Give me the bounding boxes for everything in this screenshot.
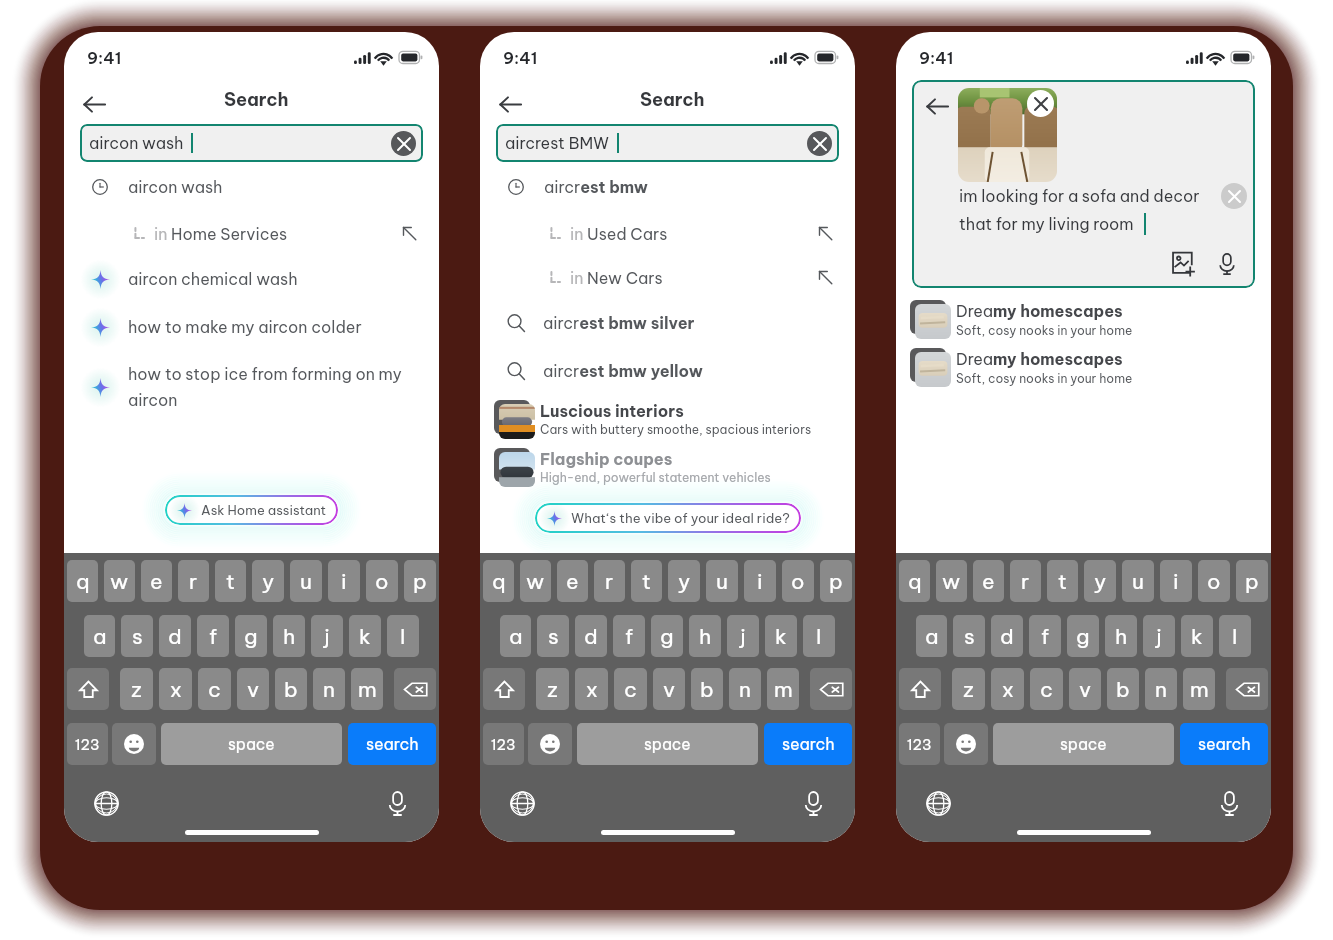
button[interactable]: u	[706, 560, 738, 602]
button[interactable]: x	[575, 668, 608, 710]
button[interactable]: h	[1105, 615, 1137, 657]
button[interactable]: in Home Services	[64, 211, 439, 256]
button[interactable]: Ask Home assistant	[165, 495, 338, 525]
button[interactable]: in New Cars	[480, 255, 855, 300]
button[interactable]: 123	[67, 723, 108, 765]
button[interactable]: space	[161, 723, 342, 765]
button[interactable]: What‘s the vibe of your ideal ride?	[535, 503, 801, 533]
button[interactable]: u	[290, 560, 322, 602]
button[interactable]: p	[404, 560, 436, 602]
button[interactable]: s	[121, 615, 153, 657]
button[interactable]: x	[159, 668, 192, 710]
button[interactable]: m	[1183, 668, 1215, 710]
button[interactable]: z	[952, 668, 985, 710]
button[interactable]: Back	[919, 88, 955, 124]
button[interactable]: f	[197, 615, 229, 657]
button[interactable]: z	[536, 668, 569, 710]
button[interactable]: Flagship coupes	[480, 443, 855, 491]
button[interactable]: Backspace	[1226, 668, 1268, 710]
button[interactable]: l	[803, 615, 835, 657]
button[interactable]: g	[1067, 615, 1099, 657]
button[interactable]: x	[991, 668, 1024, 710]
button[interactable]: s	[953, 615, 985, 657]
button[interactable]: Dreamy homescapes	[896, 295, 1271, 343]
button[interactable]: Remove image	[1027, 90, 1054, 117]
button[interactable]: r	[1010, 560, 1041, 602]
button[interactable]: Change keyboard	[90, 787, 122, 819]
button[interactable]: Dictate	[1213, 787, 1245, 819]
button[interactable]: q	[483, 560, 514, 602]
button[interactable]: e	[557, 560, 588, 602]
button[interactable]: b	[275, 668, 307, 710]
button[interactable]: f	[613, 615, 645, 657]
button[interactable]: u	[1122, 560, 1154, 602]
button[interactable]: i	[1160, 560, 1192, 602]
button[interactable]: o	[1198, 560, 1230, 602]
button[interactable]: Change keyboard	[922, 787, 954, 819]
button[interactable]: a	[84, 615, 115, 657]
button[interactable]: Luscious interiors	[480, 395, 855, 443]
button[interactable]: o	[366, 560, 398, 602]
button[interactable]: Emoji	[112, 723, 156, 765]
button[interactable]: y	[1084, 560, 1116, 602]
button[interactable]: c	[614, 668, 647, 710]
button[interactable]: aircrest BMW	[496, 124, 839, 162]
button[interactable]: Dreamy homescapes	[896, 343, 1271, 391]
button[interactable]: d	[575, 615, 607, 657]
button[interactable]: n	[1145, 668, 1177, 710]
button[interactable]: r	[594, 560, 625, 602]
button[interactable]: aircrest bmw yellow	[480, 348, 855, 394]
button[interactable]: Add image	[1169, 248, 1201, 280]
button[interactable]: i	[744, 560, 776, 602]
button[interactable]: w	[936, 560, 967, 602]
button[interactable]: p	[820, 560, 852, 602]
button[interactable]: b	[691, 668, 723, 710]
button[interactable]: t	[215, 560, 246, 602]
button[interactable]: f	[1029, 615, 1061, 657]
button[interactable]: j	[727, 615, 759, 657]
button[interactable]: e	[141, 560, 172, 602]
button[interactable]: Emoji	[944, 723, 988, 765]
button[interactable]: n	[729, 668, 761, 710]
button[interactable]: g	[651, 615, 683, 657]
button[interactable]: v	[237, 668, 269, 710]
button[interactable]: m	[351, 668, 383, 710]
button[interactable]: c	[198, 668, 231, 710]
button[interactable]: Emoji	[528, 723, 572, 765]
button[interactable]: r	[178, 560, 209, 602]
button[interactable]: aircon wash	[64, 164, 439, 210]
button[interactable]: e	[973, 560, 1004, 602]
button[interactable]: how to make my aircon colder	[64, 304, 439, 350]
button[interactable]: s	[537, 615, 569, 657]
button[interactable]: aircrest bmw silver	[480, 300, 855, 346]
button[interactable]: p	[1236, 560, 1268, 602]
button[interactable]: 123	[899, 723, 940, 765]
button[interactable]: Back	[492, 86, 528, 122]
button[interactable]: in Used Cars	[480, 211, 855, 256]
button[interactable]: Shift	[899, 668, 941, 710]
button[interactable]: Shift	[67, 668, 109, 710]
button[interactable]: Clear search	[391, 131, 416, 156]
button[interactable]: y	[252, 560, 284, 602]
button[interactable]: v	[653, 668, 685, 710]
button[interactable]: v	[1069, 668, 1101, 710]
button[interactable]: l	[387, 615, 419, 657]
button[interactable]: o	[782, 560, 814, 602]
button[interactable]: h	[689, 615, 721, 657]
button[interactable]: Dictate	[797, 787, 829, 819]
button[interactable]: aircon wash	[80, 124, 423, 162]
button[interactable]: h	[273, 615, 305, 657]
button[interactable]: t	[631, 560, 662, 602]
button[interactable]: j	[1143, 615, 1175, 657]
button[interactable]: a	[500, 615, 531, 657]
button[interactable]: m	[767, 668, 799, 710]
button[interactable]: 123	[483, 723, 524, 765]
button[interactable]: w	[104, 560, 135, 602]
button[interactable]: k	[765, 615, 797, 657]
button[interactable]: i	[328, 560, 360, 602]
button[interactable]: Backspace	[810, 668, 852, 710]
button[interactable]: q	[67, 560, 98, 602]
button[interactable]: Voice input	[1211, 248, 1243, 280]
button[interactable]: space	[993, 723, 1174, 765]
button[interactable]: t	[1047, 560, 1078, 602]
